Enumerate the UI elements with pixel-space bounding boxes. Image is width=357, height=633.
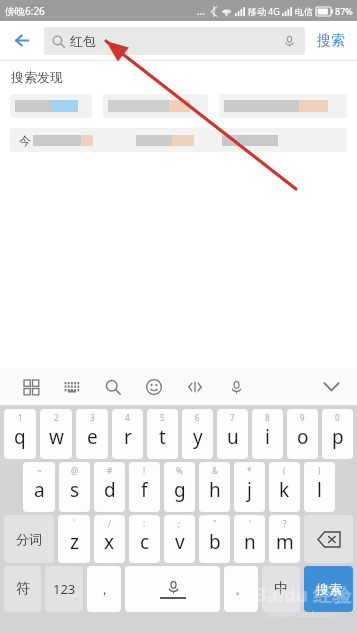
button[interactable]: Search bbox=[96, 370, 130, 404]
staticText: 电信 bbox=[295, 6, 313, 17]
button[interactable]: 6 bbox=[182, 409, 213, 459]
button[interactable]: 2 bbox=[40, 409, 72, 459]
staticText: @ bbox=[71, 465, 79, 476]
staticText: 123 bbox=[53, 580, 76, 598]
button[interactable]: ? bbox=[269, 515, 300, 563]
staticText: b bbox=[209, 529, 221, 555]
button[interactable]: Clipboard bbox=[178, 370, 212, 404]
button[interactable]: 今 bbox=[10, 128, 347, 152]
staticText: h bbox=[209, 477, 221, 503]
button[interactable]: 3 bbox=[76, 409, 108, 459]
button[interactable]: ， bbox=[87, 566, 121, 612]
button[interactable] bbox=[219, 94, 347, 118]
button[interactable]: Hide keyboard bbox=[311, 368, 351, 405]
staticText: o bbox=[297, 424, 309, 450]
button[interactable]: 。 bbox=[224, 566, 258, 612]
button[interactable]: * bbox=[234, 462, 265, 512]
staticText: 傍晚6:26 bbox=[5, 4, 45, 18]
button[interactable]: Backspace bbox=[304, 515, 353, 563]
button[interactable]: ) bbox=[304, 462, 335, 512]
staticText: 搜索 bbox=[317, 32, 345, 50]
staticText: i bbox=[265, 424, 270, 450]
staticText: ~ bbox=[37, 465, 42, 476]
button[interactable]: / bbox=[94, 515, 125, 563]
staticText: e bbox=[87, 424, 98, 450]
staticText: 87% bbox=[335, 5, 353, 17]
button[interactable]: 搜索 bbox=[305, 21, 357, 60]
button[interactable]: 123 bbox=[45, 566, 83, 612]
staticText: # bbox=[107, 465, 113, 476]
staticText: n bbox=[244, 529, 256, 555]
staticText: w bbox=[49, 424, 64, 450]
staticText: 搜索发现 bbox=[11, 69, 63, 85]
staticText: g bbox=[174, 477, 186, 503]
button[interactable]: 搜索 bbox=[304, 566, 353, 612]
staticText: 红包 bbox=[70, 33, 96, 49]
button[interactable]: @ bbox=[59, 462, 90, 512]
staticText: : bbox=[143, 518, 146, 529]
button[interactable]: 5 bbox=[147, 409, 178, 459]
button[interactable]: 8 bbox=[252, 409, 283, 459]
button[interactable]: 分词 bbox=[4, 515, 54, 563]
staticText: 今 bbox=[19, 133, 31, 148]
staticText: 9 bbox=[300, 412, 305, 423]
staticText: s bbox=[70, 477, 80, 503]
button[interactable]: ' bbox=[234, 515, 265, 563]
staticText: y bbox=[193, 424, 203, 450]
staticText: c bbox=[140, 529, 150, 555]
button[interactable]: ` bbox=[58, 515, 90, 563]
staticText: 移动 bbox=[248, 6, 266, 17]
button[interactable]: 7 bbox=[217, 409, 248, 459]
staticText: p bbox=[332, 424, 344, 450]
staticText: & bbox=[212, 465, 218, 476]
button[interactable]: Grid bbox=[14, 370, 48, 404]
button[interactable]: Keyboard bbox=[55, 370, 89, 404]
button[interactable] bbox=[10, 94, 92, 118]
button[interactable]: ~ bbox=[23, 462, 55, 512]
staticText: 搜索 bbox=[316, 581, 342, 597]
button[interactable]: 红包 bbox=[44, 27, 305, 55]
button[interactable] bbox=[103, 94, 208, 118]
staticText: ' bbox=[249, 518, 251, 529]
button[interactable]: ; bbox=[164, 515, 195, 563]
button[interactable]: 4 bbox=[112, 409, 143, 459]
button[interactable]: # bbox=[94, 462, 125, 512]
staticText: % bbox=[176, 465, 183, 476]
button[interactable]: 符 bbox=[4, 566, 41, 612]
staticText: l bbox=[317, 477, 322, 503]
button[interactable]: Emoji bbox=[137, 370, 171, 404]
button[interactable]: Voice bbox=[219, 370, 253, 404]
staticText: 3 bbox=[90, 412, 95, 423]
staticText: 6 bbox=[195, 412, 200, 423]
staticText: ， bbox=[98, 581, 111, 597]
staticText: j bbox=[247, 477, 252, 503]
staticText: 。 bbox=[235, 581, 248, 597]
staticText: q bbox=[14, 424, 26, 450]
button[interactable]: 1 bbox=[4, 409, 36, 459]
button[interactable]: 9 bbox=[287, 409, 318, 459]
button[interactable]: ( bbox=[269, 462, 300, 512]
button[interactable]: % bbox=[164, 462, 195, 512]
button[interactable]: Space bbox=[125, 566, 220, 612]
staticText: 分词 bbox=[16, 531, 42, 547]
button[interactable]: " bbox=[199, 515, 230, 563]
button[interactable]: ! bbox=[129, 462, 160, 512]
button[interactable]: Voice input bbox=[276, 28, 302, 54]
staticText: ... bbox=[197, 4, 206, 18]
staticText: k bbox=[279, 477, 290, 503]
staticText: 中 bbox=[274, 580, 288, 598]
staticText: ? bbox=[283, 518, 287, 529]
staticText: f bbox=[141, 477, 148, 503]
staticText: z bbox=[70, 529, 79, 555]
staticText: 8 bbox=[265, 412, 270, 423]
staticText: m bbox=[276, 529, 294, 555]
button[interactable]: : bbox=[129, 515, 160, 563]
button[interactable]: 中 bbox=[262, 566, 300, 612]
staticText: r bbox=[124, 424, 132, 450]
button[interactable]: & bbox=[199, 462, 230, 512]
button[interactable]: Back bbox=[0, 21, 44, 60]
staticText: d bbox=[104, 477, 116, 503]
button[interactable]: 0 bbox=[322, 409, 353, 459]
staticText: 7 bbox=[230, 412, 235, 423]
staticText: ) bbox=[318, 465, 321, 476]
